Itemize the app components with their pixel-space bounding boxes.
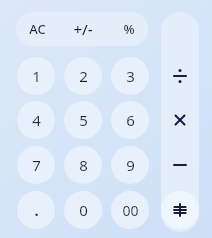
staticText: 4 (32, 110, 41, 130)
staticText: AC (29, 20, 46, 38)
button[interactable]: Subtract (161, 144, 199, 186)
button[interactable]: 4 (17, 101, 55, 139)
staticText: 00 (122, 201, 139, 220)
button[interactable]: 00 (111, 191, 149, 229)
staticText: . (34, 200, 39, 220)
staticText: 0 (79, 200, 88, 220)
button[interactable]: . (17, 191, 55, 229)
staticText: +/- (73, 19, 93, 39)
staticText: 5 (79, 110, 88, 130)
staticText: 2 (79, 66, 88, 86)
staticText: % (123, 20, 135, 38)
button[interactable]: 7 (17, 146, 55, 184)
button[interactable]: 0 (64, 191, 102, 229)
staticText: 3 (126, 66, 135, 86)
staticText: 1 (32, 66, 41, 86)
staticText: 8 (79, 155, 88, 175)
staticText: 7 (32, 155, 41, 175)
staticText: 9 (126, 155, 135, 175)
button[interactable]: 6 (111, 101, 149, 139)
button[interactable]: 2 (64, 57, 102, 95)
button[interactable]: AC (16, 12, 58, 46)
button[interactable]: Equals (161, 189, 199, 231)
staticText: 6 (126, 110, 135, 130)
button[interactable]: Multiply (161, 99, 199, 141)
button[interactable]: 3 (111, 57, 149, 95)
button[interactable]: 9 (111, 146, 149, 184)
button[interactable]: +/- (61, 12, 105, 46)
button[interactable]: Add (161, 189, 199, 231)
button[interactable]: Divide (161, 55, 199, 97)
button[interactable]: 1 (17, 57, 55, 95)
button[interactable]: 8 (64, 146, 102, 184)
button[interactable]: % (108, 12, 150, 46)
button[interactable]: 5 (64, 101, 102, 139)
